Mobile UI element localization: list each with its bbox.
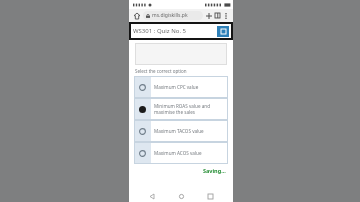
staticText: WS301 : Quiz No. 5 xyxy=(133,27,217,35)
staticText: Saving... xyxy=(203,167,226,174)
staticText: Minimum ROAS value and maximise the sale… xyxy=(154,103,210,115)
button[interactable]: Maximum TACOS value xyxy=(134,120,228,142)
staticText: Maximum CPC value xyxy=(154,84,199,90)
button[interactable]: More options xyxy=(222,12,230,20)
button[interactable]: Minimum ROAS value and maximise the sale… xyxy=(134,98,228,120)
button[interactable]: Back xyxy=(146,190,158,202)
staticText: ms.digiskills.pk xyxy=(152,12,188,19)
button[interactable]: Quiz action xyxy=(217,26,229,37)
button[interactable]: Recent apps xyxy=(204,190,216,202)
staticText: Select the correct option xyxy=(135,68,187,74)
button[interactable]: Home xyxy=(132,11,142,21)
staticText: Maximum TACOS value xyxy=(154,128,204,134)
button[interactable]: ms.digiskills.pk xyxy=(143,11,203,20)
button[interactable]: Tabs xyxy=(213,11,222,20)
button[interactable]: Maximum CPC value xyxy=(134,76,228,98)
button[interactable]: Maximum ACOS value xyxy=(134,142,228,164)
button[interactable]: New tab xyxy=(204,11,213,20)
staticText: Maximum ACOS value xyxy=(154,150,202,156)
button[interactable]: Home xyxy=(175,190,187,202)
